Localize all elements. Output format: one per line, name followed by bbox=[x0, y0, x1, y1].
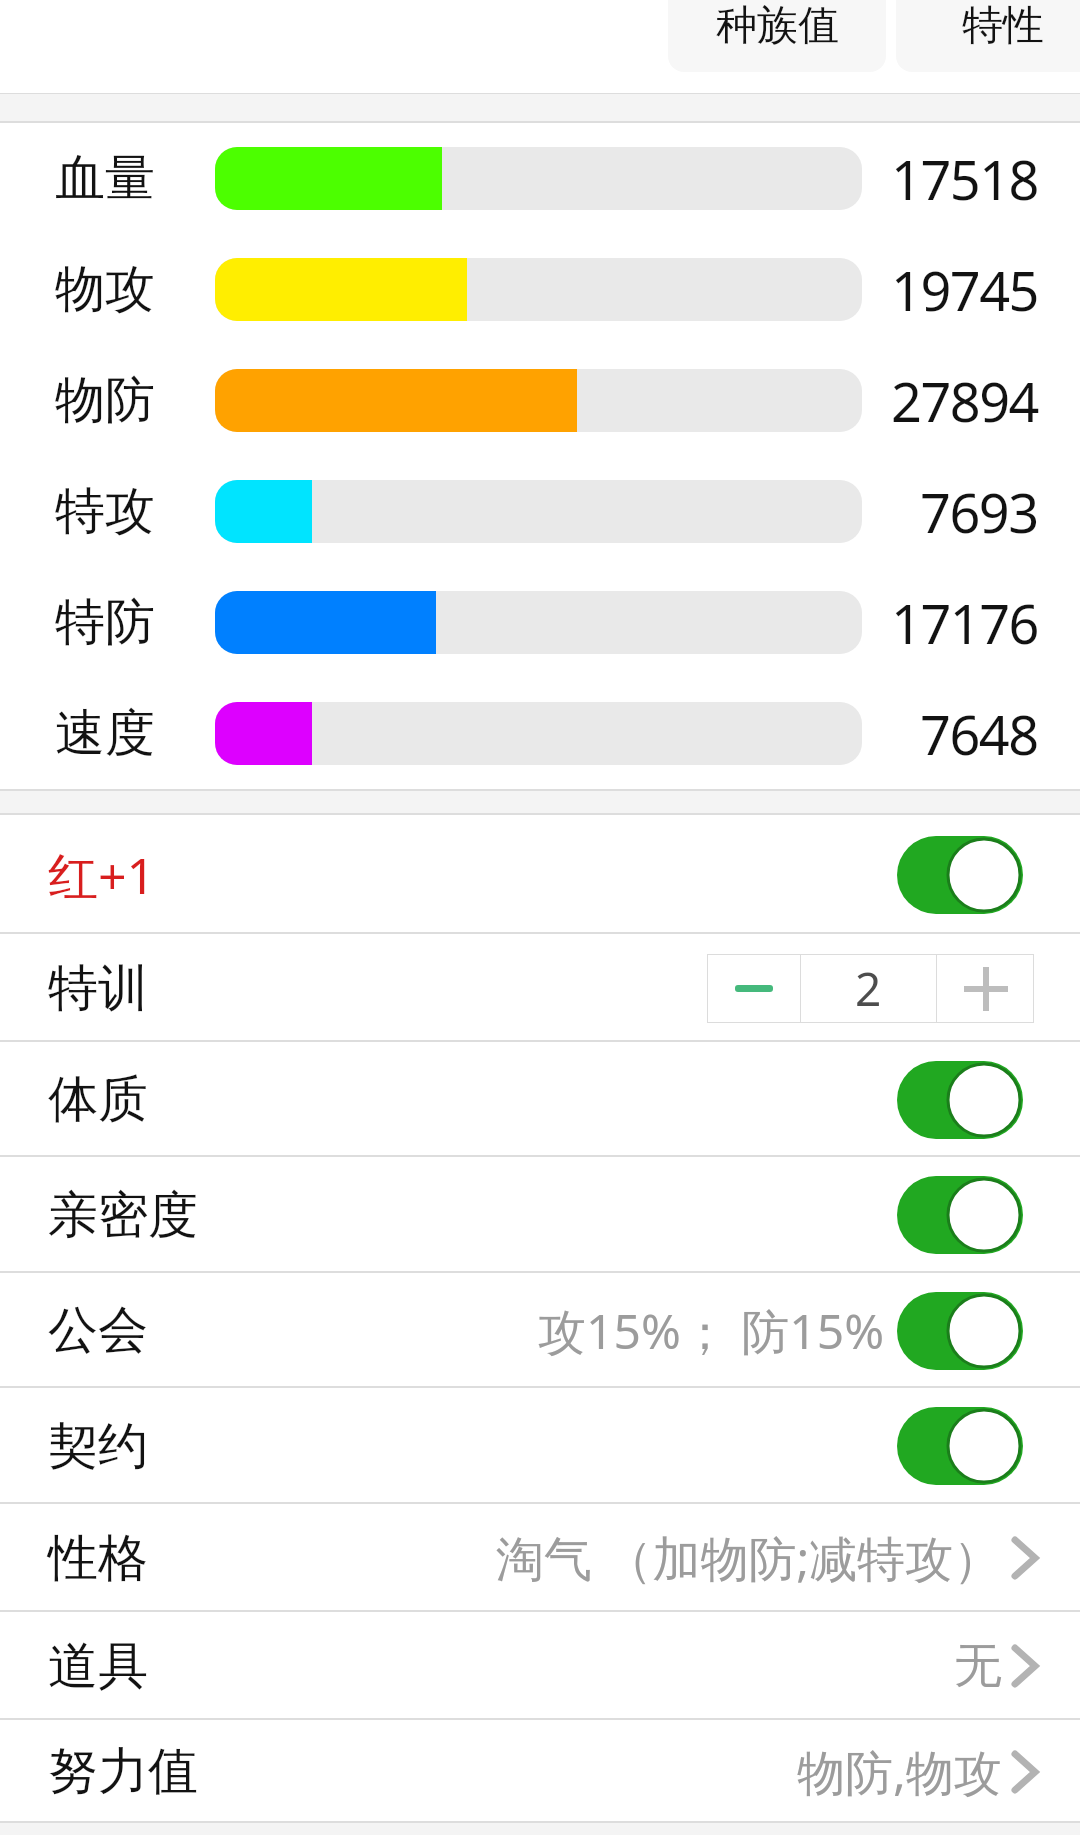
staticText: 性格 bbox=[48, 1527, 148, 1590]
button[interactable]: 特训 bbox=[0, 934, 1080, 1042]
staticText: 道具 bbox=[48, 1635, 148, 1698]
staticText: 努力值 bbox=[48, 1740, 198, 1803]
button[interactable] bbox=[707, 954, 800, 1023]
staticText: 特防 bbox=[55, 591, 155, 654]
staticText: 淘气 （加物防;减特攻） bbox=[496, 1525, 1002, 1591]
button[interactable]: 亲密度 bbox=[0, 1157, 1080, 1273]
staticText: 17176 bbox=[891, 586, 1038, 660]
staticText: 特攻 bbox=[55, 480, 155, 543]
button[interactable] bbox=[897, 1407, 1023, 1485]
staticText: 公会 bbox=[48, 1299, 148, 1362]
button[interactable] bbox=[897, 1176, 1023, 1254]
button[interactable]: 契约 bbox=[0, 1388, 1080, 1504]
staticText: 物攻 bbox=[55, 258, 155, 321]
button[interactable]: 种族值 bbox=[668, 0, 886, 72]
staticText: 亲密度 bbox=[48, 1184, 198, 1247]
button[interactable]: 体质 bbox=[0, 1042, 1080, 1157]
staticText: 攻15%； 防15% bbox=[538, 1298, 885, 1364]
button[interactable] bbox=[937, 954, 1034, 1023]
staticText: 7648 bbox=[920, 697, 1038, 771]
staticText: 19745 bbox=[891, 253, 1038, 327]
button[interactable]: 特性 bbox=[896, 0, 1080, 72]
staticText: 速度 bbox=[55, 702, 155, 765]
staticText: 2 bbox=[855, 957, 882, 1020]
button[interactable] bbox=[897, 1061, 1023, 1139]
button[interactable]: 道具 bbox=[0, 1612, 1080, 1720]
staticText: 契约 bbox=[48, 1415, 148, 1478]
button[interactable] bbox=[897, 836, 1023, 914]
button[interactable] bbox=[897, 1292, 1023, 1370]
staticText: 7693 bbox=[920, 475, 1038, 549]
staticText: 特训 bbox=[48, 957, 148, 1020]
button[interactable]: 公会 bbox=[0, 1273, 1080, 1388]
button[interactable]: 努力值 bbox=[0, 1720, 1080, 1823]
staticText: 27894 bbox=[891, 364, 1038, 438]
staticText: 红+1 bbox=[48, 841, 156, 909]
button[interactable]: 红+1 bbox=[0, 815, 1080, 934]
staticText: 种族值 bbox=[716, 0, 839, 52]
staticText: 物防,物攻 bbox=[797, 1739, 1002, 1805]
staticText: 体质 bbox=[48, 1068, 148, 1131]
staticText: 17518 bbox=[891, 142, 1038, 216]
staticText: 血量 bbox=[55, 147, 155, 210]
staticText: 物防 bbox=[55, 369, 155, 432]
staticText: 特性 bbox=[962, 0, 1044, 52]
button[interactable]: 性格 bbox=[0, 1504, 1080, 1612]
staticText: 无 bbox=[954, 1636, 1002, 1696]
